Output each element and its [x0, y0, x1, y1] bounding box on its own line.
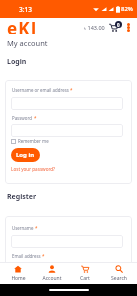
staticText: 3:13	[19, 5, 32, 14]
button[interactable]: More options	[122, 21, 134, 33]
staticText: Email address	[12, 253, 42, 259]
staticText: *	[35, 225, 38, 231]
staticText: My account	[7, 38, 48, 48]
staticText: Password	[12, 115, 34, 121]
staticText: Log in	[16, 151, 35, 159]
button[interactable]: Account	[37, 265, 67, 282]
staticText: ৳ 143.00	[84, 24, 105, 31]
staticText: *	[34, 115, 37, 121]
staticText: Username or email address	[12, 87, 70, 93]
staticText: eKJ	[7, 17, 38, 34]
staticText: Remember me	[18, 138, 49, 144]
staticText: Login	[7, 57, 27, 67]
button[interactable]: Remember me	[11, 137, 49, 145]
button[interactable]	[11, 235, 123, 248]
staticText: Cart	[80, 275, 90, 282]
button[interactable]: Cart	[108, 20, 122, 34]
staticText: Username	[12, 225, 35, 231]
button[interactable]	[11, 124, 123, 137]
button[interactable]: Lost your password?	[11, 166, 56, 172]
button[interactable]: Home	[3, 265, 33, 282]
staticText: 82%	[121, 5, 133, 13]
staticText: Search	[111, 275, 127, 282]
staticText: *	[70, 87, 73, 93]
staticText: Register	[7, 192, 37, 202]
button[interactable]	[11, 97, 123, 110]
staticText: 0	[117, 22, 120, 28]
staticText: Home	[11, 275, 26, 282]
staticText: *	[42, 253, 45, 259]
button[interactable]: Cart	[70, 265, 100, 282]
staticText: Account	[42, 275, 62, 282]
button[interactable]: Search	[104, 265, 134, 282]
button[interactable]: Log in	[11, 148, 40, 162]
